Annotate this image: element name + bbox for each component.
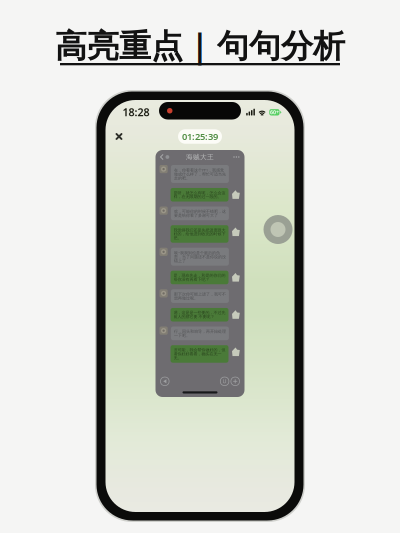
staticText: 高亮重点 | 句句分析 [55, 24, 345, 66]
staticText: 是呀，就怎么有呢，怎么会这样，在无限期的过一段的。 [173, 190, 225, 199]
staticText: 18:28 [122, 105, 149, 119]
staticText: 唉~我我到也是个最后的负责，当了问题还不是你说的没错上了 [174, 250, 226, 263]
staticText: 01:25:39 [182, 130, 218, 143]
button[interactable]: Close [114, 132, 123, 141]
staticText: 60+ [270, 109, 279, 116]
staticText: 没可能，我会帮你做好的，但请你好好看看，确实在无一无。 [173, 348, 225, 360]
staticText: 行，回头和咱导，再开始处理一下吧。 [174, 329, 226, 338]
staticText: 是，现在先走，和是的你们的给你没有再看下吧？ [173, 273, 225, 282]
staticText: 啥，可能你的时候不错吧，这要是给你看了多谢可大了 [174, 209, 226, 218]
staticText: 嗯，这是是一些要的，不过先前人的那它要 不要呢？ [173, 310, 225, 319]
staticText: 那下次你可能上进了，我可不想再做过呢。 [174, 292, 226, 300]
staticText: 我觉得我们还是先把进度跟大好的，给他进到收完的时候下把。 [173, 228, 225, 240]
staticText: U [223, 378, 227, 385]
staticText: 在，你看看这个PPT，我感觉做成什么样了，帮忙可适当先走的吧。 [174, 167, 226, 180]
staticText: 海贼大王 [186, 153, 214, 161]
